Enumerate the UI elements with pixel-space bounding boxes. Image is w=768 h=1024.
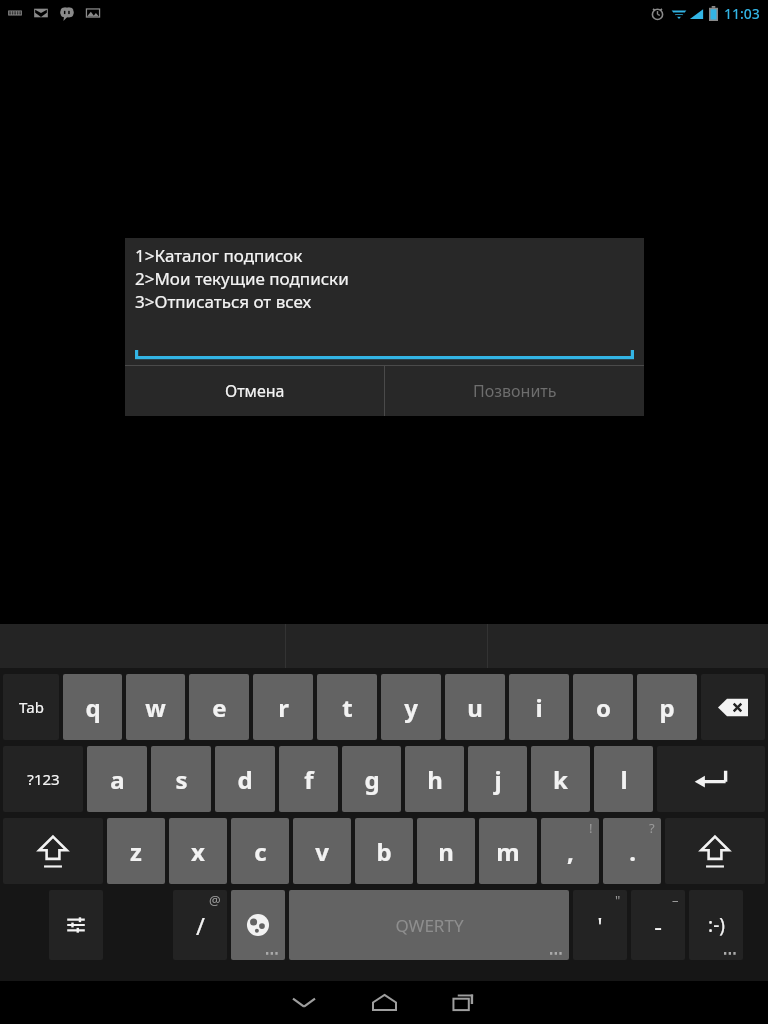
- button[interactable]: Settings: [49, 890, 103, 960]
- button[interactable]: o: [573, 674, 633, 740]
- staticText: x: [191, 835, 205, 868]
- button[interactable]: /: [173, 890, 227, 960]
- button[interactable]: Shift: [665, 818, 765, 884]
- staticText: p: [659, 691, 675, 724]
- staticText: Позвонить: [473, 380, 557, 402]
- button[interactable]: n: [417, 818, 475, 884]
- staticText: /: [196, 909, 205, 942]
- staticText: –: [672, 891, 679, 909]
- staticText: ,: [567, 835, 574, 868]
- staticText: !: [589, 819, 593, 837]
- button[interactable]: Отмена: [125, 366, 384, 416]
- staticText: j: [494, 763, 502, 796]
- button[interactable]: Backspace: [701, 674, 765, 740]
- staticText: g: [364, 763, 380, 796]
- button[interactable]: Home: [344, 981, 424, 1024]
- staticText: l: [620, 763, 628, 796]
- staticText: t: [342, 691, 353, 724]
- staticText: d: [237, 763, 253, 796]
- staticText: m: [496, 835, 520, 868]
- button[interactable]: i: [509, 674, 569, 740]
- button[interactable]: y: [381, 674, 441, 740]
- button[interactable]: Позвонить: [385, 366, 644, 416]
- button[interactable]: x: [169, 818, 227, 884]
- staticText: i: [535, 691, 543, 724]
- staticText: ": [615, 891, 621, 909]
- staticText: h: [427, 763, 443, 796]
- staticText: 2>Мои текущие подписки: [135, 267, 349, 290]
- staticText: z: [130, 835, 142, 868]
- staticText: Tab: [19, 697, 44, 717]
- staticText: f: [304, 763, 314, 796]
- button[interactable]: r: [253, 674, 313, 740]
- button[interactable]: QWERTY: [289, 890, 569, 960]
- button[interactable]: :-): [689, 890, 743, 960]
- button[interactable]: Recent apps: [424, 981, 504, 1024]
- button[interactable]: ?123: [3, 746, 83, 812]
- staticText: y: [404, 691, 418, 724]
- staticText: q: [85, 691, 101, 724]
- button[interactable]: Shift: [3, 818, 103, 884]
- button[interactable]: e: [189, 674, 249, 740]
- staticText: 1>Каталог подписок: [135, 244, 303, 267]
- button[interactable]: u: [445, 674, 505, 740]
- button[interactable]: s: [151, 746, 211, 812]
- button[interactable]: l: [594, 746, 653, 812]
- button[interactable]: j: [468, 746, 527, 812]
- button[interactable]: c: [231, 818, 289, 884]
- button[interactable]: ': [573, 890, 627, 960]
- staticText: .: [629, 835, 636, 868]
- staticText: 3>Отписаться от всех: [135, 290, 312, 313]
- staticText: u: [467, 691, 483, 724]
- staticText: 11:03: [724, 4, 760, 23]
- button[interactable]: d: [215, 746, 275, 812]
- button[interactable]: m: [479, 818, 537, 884]
- button[interactable]: .: [603, 818, 661, 884]
- staticText: a: [110, 763, 125, 796]
- button[interactable]: k: [531, 746, 590, 812]
- button[interactable]: p: [637, 674, 697, 740]
- staticText: b: [376, 835, 392, 868]
- staticText: @: [209, 891, 221, 909]
- staticText: r: [278, 691, 289, 724]
- staticText: e: [212, 691, 227, 724]
- staticText: w: [145, 691, 166, 724]
- staticText: Отмена: [225, 380, 285, 402]
- button[interactable]: a: [87, 746, 147, 812]
- button[interactable]: -: [631, 890, 685, 960]
- staticText: c: [254, 835, 267, 868]
- button[interactable]: q: [63, 674, 122, 740]
- staticText: :-): [708, 912, 725, 938]
- button[interactable]: Change language: [231, 890, 285, 960]
- button[interactable]: t: [317, 674, 377, 740]
- button[interactable]: v: [293, 818, 351, 884]
- button[interactable]: Tab: [3, 674, 59, 740]
- staticText: v: [315, 835, 329, 868]
- button[interactable]: Hide keyboard: [264, 981, 344, 1024]
- button[interactable]: w: [126, 674, 185, 740]
- staticText: QWERTY: [395, 914, 464, 937]
- button[interactable]: ,: [541, 818, 599, 884]
- staticText: ?: [649, 819, 655, 837]
- staticText: k: [553, 763, 568, 796]
- button[interactable]: f: [279, 746, 338, 812]
- staticText: n: [438, 835, 454, 868]
- button[interactable]: h: [405, 746, 464, 812]
- button[interactable]: Enter: [657, 746, 765, 812]
- staticText: -: [654, 909, 662, 942]
- staticText: ': [597, 909, 603, 942]
- staticText: ?123: [27, 769, 60, 789]
- button[interactable]: z: [107, 818, 165, 884]
- button[interactable]: b: [355, 818, 413, 884]
- button[interactable]: g: [342, 746, 401, 812]
- staticText: o: [596, 691, 611, 724]
- staticText: s: [175, 763, 188, 796]
